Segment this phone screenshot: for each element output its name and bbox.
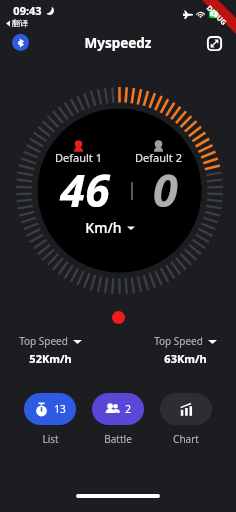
- staticText: List: [42, 432, 59, 446]
- staticText: 2: [125, 402, 131, 416]
- staticText: Battle: [104, 432, 132, 446]
- staticText: DEBUG: [204, 4, 229, 28]
- staticText: 46: [60, 159, 110, 220]
- staticText: 62: [210, 10, 217, 18]
- staticText: 09:43: [13, 3, 42, 18]
- staticText: Top Speed: [154, 334, 203, 348]
- button[interactable]: Top Speed: [19, 334, 82, 366]
- button[interactable]: 2: [92, 393, 144, 425]
- staticText: 63Km/h: [164, 351, 207, 366]
- button[interactable]: Bluetooth: [12, 34, 29, 51]
- button[interactable]: [160, 393, 212, 425]
- staticText: Chart: [173, 432, 199, 446]
- staticText: Default 2: [135, 150, 182, 165]
- button[interactable]: Top Speed: [154, 334, 217, 366]
- button[interactable]: Fullscreen: [201, 30, 228, 57]
- staticText: 翻译: [12, 18, 28, 28]
- staticText: Km/h: [85, 218, 122, 237]
- staticText: Myspeedz: [84, 34, 152, 52]
- staticText: 52Km/h: [29, 351, 72, 366]
- staticText: Default 1: [55, 150, 102, 165]
- button[interactable]: Km/h: [80, 215, 140, 240]
- staticText: Top Speed: [19, 334, 68, 348]
- staticText: 13: [54, 402, 66, 416]
- staticText: 0: [153, 159, 178, 220]
- button[interactable]: 13: [24, 393, 76, 425]
